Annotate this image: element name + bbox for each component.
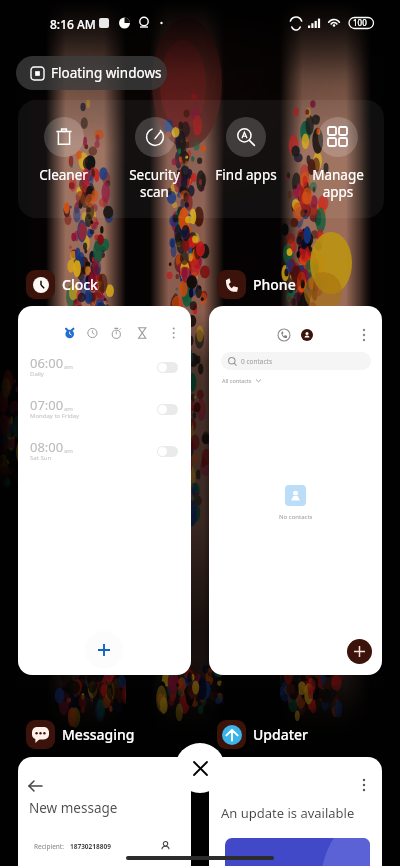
staticText: am: [64, 363, 73, 371]
button[interactable]: 0 contacts: [209, 306, 382, 675]
staticText: Floating windows: [51, 64, 162, 82]
button[interactable]: [157, 446, 178, 457]
staticText: All contacts: [222, 377, 252, 384]
staticText: Monday to Friday: [30, 412, 80, 420]
button[interactable]: Add contact: [347, 639, 372, 664]
button[interactable]: [157, 404, 178, 415]
button[interactable]: 0 contacts: [221, 352, 371, 370]
staticText: Sat Sun: [30, 454, 52, 462]
staticText: Recipient:: [34, 842, 64, 851]
button[interactable]: [157, 362, 178, 373]
staticText: New message: [29, 799, 118, 817]
staticText: 18730218809: [70, 842, 111, 851]
staticText: Updater: [253, 725, 309, 744]
staticText: 8:16 AM: [50, 16, 96, 32]
staticText: Cleaner: [39, 166, 88, 184]
button[interactable]: Clock: [26, 270, 98, 299]
staticText: Clock: [62, 275, 98, 294]
staticText: Manage apps: [312, 166, 364, 201]
button[interactable]: Messaging: [26, 720, 135, 749]
staticText: No contacts: [279, 513, 313, 521]
staticText: 06:00: [30, 354, 64, 372]
staticText: 08:00: [30, 438, 64, 456]
staticText: Daily: [30, 370, 44, 378]
button[interactable]: 08:00: [18, 438, 191, 468]
other: Add recipient: [160, 841, 171, 852]
button[interactable]: Updater: [217, 720, 309, 749]
button[interactable]: New message: [18, 757, 191, 866]
button[interactable]: Close all: [175, 743, 225, 793]
staticText: 07:00: [30, 396, 64, 414]
button[interactable]: Phone: [217, 270, 296, 299]
button[interactable]: Manage apps: [292, 100, 384, 218]
staticText: Find apps: [215, 166, 277, 184]
staticText: 100: [353, 17, 367, 28]
staticText: am: [64, 405, 73, 413]
staticText: Messaging: [62, 725, 135, 744]
button[interactable]: Add alarm: [85, 631, 123, 669]
button[interactable]: Floating windows: [16, 56, 167, 90]
button[interactable]: An update is available: [209, 757, 382, 866]
staticText: An update is available: [221, 804, 355, 822]
staticText: 0 contacts: [241, 357, 273, 366]
staticText: Phone: [253, 275, 296, 294]
staticText: am: [64, 447, 73, 455]
button[interactable]: Cleaner: [18, 100, 109, 218]
button[interactable]: 06:00: [18, 354, 191, 384]
button[interactable]: 06:00: [18, 306, 191, 675]
button[interactable]: Find apps: [200, 100, 292, 218]
staticText: Security scan: [129, 166, 180, 201]
button[interactable]: Security scan: [109, 100, 200, 218]
button[interactable]: 07:00: [18, 396, 191, 426]
